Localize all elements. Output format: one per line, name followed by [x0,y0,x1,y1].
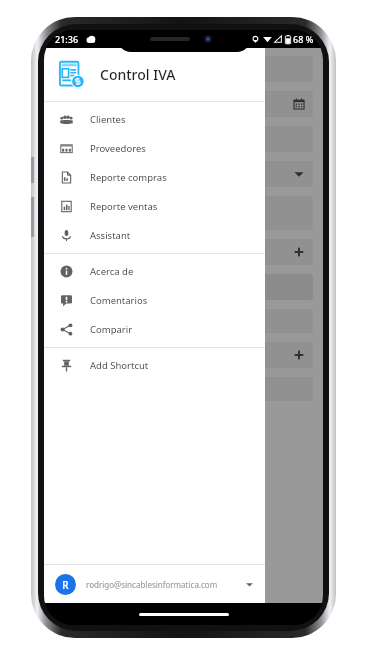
button[interactable]: R [44,565,265,603]
button[interactable]: Control IVA [44,48,265,101]
button[interactable]: Comparir [44,315,265,344]
button[interactable]: Comentarios [44,286,265,315]
button[interactable]: Add Shortcut [44,351,265,380]
staticText: rodrigo@sincablesinformatica.com [86,579,218,590]
staticText: Acerca de [90,265,134,278]
staticText: Proveedores [90,142,146,155]
staticText: Control IVA [100,65,176,84]
button[interactable]: Assistant [44,221,265,250]
staticText: R [62,578,69,592]
button[interactable]: Reporte ventas [44,192,265,221]
button[interactable]: Reporte compras [44,163,265,192]
staticText: Add Shortcut [90,359,149,372]
staticText: Reporte ventas [90,200,158,213]
button[interactable]: Acerca de [44,257,265,286]
staticText: Reporte compras [90,171,167,184]
button[interactable]: Proveedores [44,134,265,163]
staticText: 68 % [293,33,314,45]
staticText: Comparir [90,323,133,336]
staticText: Clientes [90,113,126,126]
staticText: Comentarios [90,294,148,307]
button[interactable]: Clientes [44,105,265,134]
staticText: 21:36 [55,33,79,45]
staticText: Assistant [90,229,131,242]
